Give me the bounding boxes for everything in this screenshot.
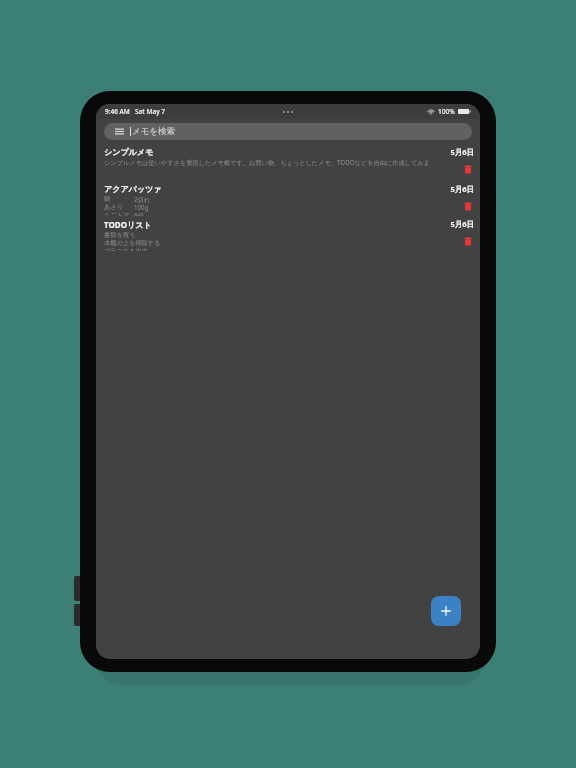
button[interactable]: シンプルメモ	[96, 144, 480, 181]
button[interactable]: 削除	[462, 200, 474, 212]
staticText: メモを検索	[132, 126, 176, 137]
staticText: あさり	[104, 203, 123, 211]
staticText: 書類を買う	[104, 231, 136, 239]
staticText: 本棚の上を掃除する	[104, 239, 161, 247]
staticText: TODOリスト	[104, 219, 152, 230]
button[interactable]: アクアパッツァ	[96, 181, 480, 216]
staticText: 2切れ	[134, 195, 151, 203]
staticText: 100%	[438, 107, 455, 116]
staticText: 5月6日	[450, 184, 474, 194]
staticText: ミニトマト	[104, 211, 134, 216]
button[interactable]: TODOリスト	[96, 216, 480, 251]
button[interactable]: 新しいメモを作成	[431, 596, 461, 626]
staticText: アクアパッツァ	[104, 184, 162, 194]
staticText: シンプルメモは使いやすさを重視したメモ帳です。お買い物、ちょっとしたメモ、TOD…	[104, 158, 436, 166]
staticText: シンプルメモ	[104, 147, 154, 157]
staticText: 6個	[134, 211, 144, 216]
staticText: 5月6日	[450, 219, 474, 229]
button[interactable]: 削除	[462, 235, 474, 247]
staticText: 鯛	[104, 195, 111, 203]
staticText: 100g	[134, 203, 149, 211]
staticText: 9:46 AM	[105, 107, 130, 116]
button[interactable]: 削除	[462, 163, 474, 175]
button[interactable]: メニュー	[113, 125, 126, 138]
staticText: 5月6日	[450, 147, 474, 157]
staticText: Sat May 7	[135, 107, 165, 116]
button[interactable]: メニュー	[104, 123, 472, 140]
staticText: プラごみを出す	[104, 247, 149, 251]
